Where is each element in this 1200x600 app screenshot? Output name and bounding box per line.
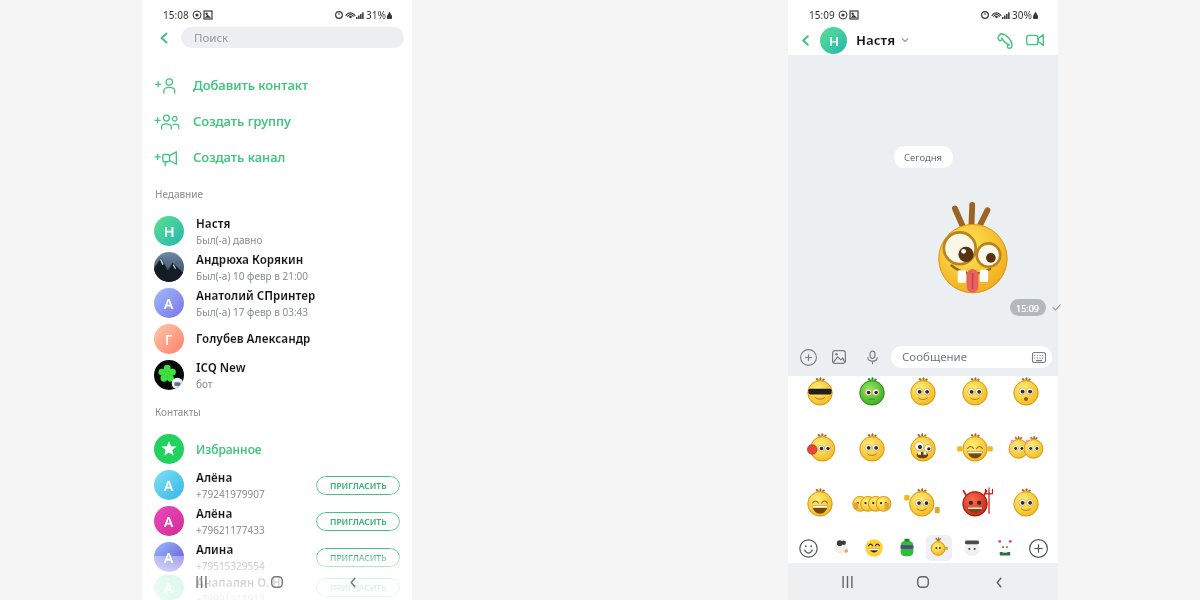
button[interactable]: Home xyxy=(265,570,289,594)
staticText: Н xyxy=(164,222,175,241)
staticText: А xyxy=(164,512,174,531)
staticText: 15:09 xyxy=(809,8,835,22)
staticText: ПРИГЛАСИТЬ xyxy=(330,516,387,528)
button[interactable]: Sticker xyxy=(799,482,841,524)
button[interactable]: А xyxy=(142,285,412,321)
staticText: А xyxy=(164,294,174,313)
staticText: Недавние xyxy=(155,187,203,201)
button[interactable]: Sticker xyxy=(954,371,996,413)
staticText: +79991211912 xyxy=(196,592,265,600)
button[interactable]: Attach xyxy=(798,347,818,367)
staticText: Г xyxy=(165,330,173,349)
staticText: 30% xyxy=(1012,8,1032,22)
staticText: А xyxy=(164,548,174,567)
staticText: Анапалян О. Н xyxy=(196,575,281,591)
button[interactable]: Поиск xyxy=(181,27,404,48)
button[interactable]: Sticker xyxy=(902,482,944,524)
staticText: Добавить контакт xyxy=(193,76,309,94)
button[interactable]: Sticker xyxy=(1005,371,1047,413)
staticText: А xyxy=(164,578,174,597)
button[interactable]: Back xyxy=(797,32,813,48)
button[interactable]: ПРИГЛАСИТЬ xyxy=(316,578,400,597)
button[interactable]: Emoji xyxy=(795,535,821,561)
button[interactable]: А xyxy=(142,539,412,575)
button[interactable]: Home xyxy=(911,570,935,594)
button[interactable]: Sticker xyxy=(851,371,893,413)
staticText: Создать группу xyxy=(193,112,291,130)
button[interactable]: Sticker pack xyxy=(861,535,887,561)
button[interactable]: А xyxy=(142,467,412,503)
button[interactable]: Сообщение xyxy=(891,346,1052,368)
staticText: Настя xyxy=(196,216,231,232)
staticText: ПРИГЛАСИТЬ xyxy=(330,480,387,492)
staticText: ICQ New xyxy=(196,360,246,376)
button[interactable]: Sticker xyxy=(851,427,893,469)
staticText: Создать канал xyxy=(193,148,286,166)
staticText: А xyxy=(164,476,174,495)
staticText: Алёна xyxy=(196,506,233,522)
button[interactable]: Г xyxy=(142,321,412,357)
staticText: Контакты xyxy=(155,405,201,419)
button[interactable]: ПРИГЛАСИТЬ xyxy=(316,476,400,495)
staticText: Был(-а) 10 февр в 21:00 xyxy=(196,269,309,283)
button[interactable]: Add sticker pack xyxy=(1025,535,1051,561)
button[interactable]: Создать канал xyxy=(142,139,412,175)
staticText: бот xyxy=(196,377,213,391)
staticText: Сообщение xyxy=(902,349,968,365)
button[interactable]: Sticker xyxy=(902,427,944,469)
staticText: Сегодня xyxy=(904,151,943,164)
button[interactable]: Добавить контакт xyxy=(142,67,412,103)
button[interactable]: Back xyxy=(341,570,365,594)
button[interactable]: Back xyxy=(987,570,1011,594)
staticText: Был(-а) давно xyxy=(196,233,263,247)
staticText: Алина xyxy=(196,542,234,558)
button[interactable]: Sticker pack xyxy=(894,535,920,561)
button[interactable]: Sticker pack xyxy=(959,535,985,561)
button[interactable]: Sticker xyxy=(954,427,996,469)
staticText: Избранное xyxy=(196,441,262,457)
button[interactable]: Настя xyxy=(856,31,909,49)
staticText: Был(-а) 17 февр в 03:43 xyxy=(196,305,309,319)
button[interactable]: ICQ New xyxy=(142,357,412,393)
button[interactable]: Андрюха Корякин xyxy=(142,249,412,285)
button[interactable]: Sticker pack xyxy=(926,535,952,561)
staticText: +79515329554 xyxy=(196,559,265,573)
button[interactable]: Sticker xyxy=(1005,482,1047,524)
button[interactable]: Sticker xyxy=(1005,427,1047,469)
button[interactable]: Recents xyxy=(189,570,213,594)
button[interactable]: Н xyxy=(142,213,412,249)
staticText: Поиск xyxy=(194,30,229,46)
staticText: Алёна xyxy=(196,470,233,486)
button[interactable]: А xyxy=(142,575,412,600)
button[interactable]: ПРИГЛАСИТЬ xyxy=(316,548,400,567)
button[interactable]: Call xyxy=(993,29,1015,51)
button[interactable]: ПРИГЛАСИТЬ xyxy=(316,512,400,531)
staticText: Голубев Александр xyxy=(196,331,311,347)
button[interactable]: Recents xyxy=(835,570,859,594)
button[interactable]: Н xyxy=(820,27,847,54)
button[interactable]: Sticker xyxy=(851,482,893,524)
button[interactable]: Создать группу xyxy=(142,103,412,139)
button[interactable]: Voice message xyxy=(862,347,882,367)
button[interactable]: Sticker xyxy=(902,371,944,413)
staticText: 31% xyxy=(366,8,386,22)
staticText: ПРИГЛАСИТЬ xyxy=(330,552,387,564)
button[interactable]: А xyxy=(142,503,412,539)
button[interactable]: Sticker xyxy=(799,427,841,469)
button[interactable]: Sticker xyxy=(954,482,996,524)
button[interactable]: Video call xyxy=(1024,29,1046,51)
staticText: 15:09 xyxy=(1016,302,1040,314)
staticText: 15:08 xyxy=(163,8,189,22)
staticText: Н xyxy=(829,32,839,50)
button[interactable]: Избранное xyxy=(142,431,412,467)
staticText: ПРИГЛАСИТЬ xyxy=(330,582,387,594)
button[interactable]: Back xyxy=(155,29,173,47)
button[interactable]: Sticker pack xyxy=(992,535,1018,561)
staticText: +79621177433 xyxy=(196,523,265,537)
button[interactable]: Gallery xyxy=(829,347,849,367)
button[interactable]: Sticker pack xyxy=(828,535,854,561)
staticText: Андрюха Корякин xyxy=(196,252,304,268)
staticText: +79241979907 xyxy=(196,487,265,501)
button[interactable]: Sticker xyxy=(799,371,841,413)
staticText: Настя xyxy=(856,31,896,49)
